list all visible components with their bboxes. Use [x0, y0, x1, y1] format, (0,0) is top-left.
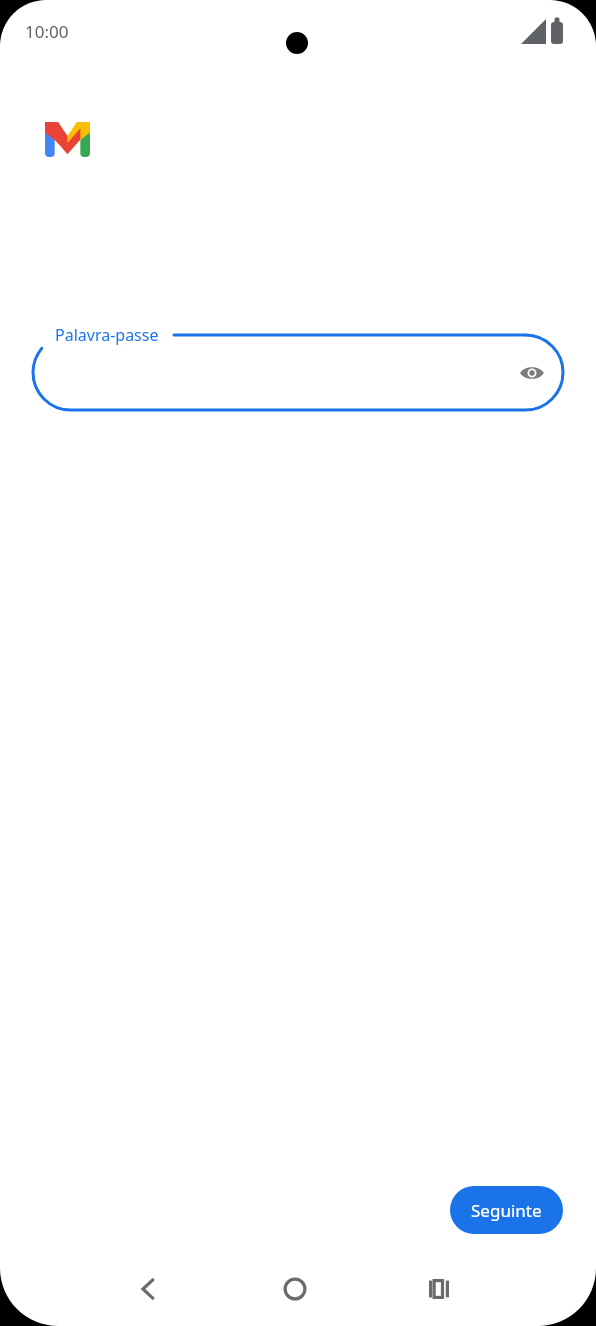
- button[interactable]: Palavra-passe: [33, 335, 563, 410]
- staticText: Palavra-passe: [55, 324, 159, 346]
- button[interactable]: Back: [119, 1259, 179, 1319]
- staticText: 10:00: [25, 20, 69, 43]
- button[interactable]: Seguinte: [450, 1186, 563, 1234]
- other: Gmail: [45, 122, 90, 157]
- button[interactable]: Mostrar palavra-passe: [510, 351, 554, 395]
- button[interactable]: Home: [265, 1259, 325, 1319]
- button[interactable]: Recent apps: [408, 1259, 468, 1319]
- staticText: Seguinte: [471, 1199, 542, 1222]
